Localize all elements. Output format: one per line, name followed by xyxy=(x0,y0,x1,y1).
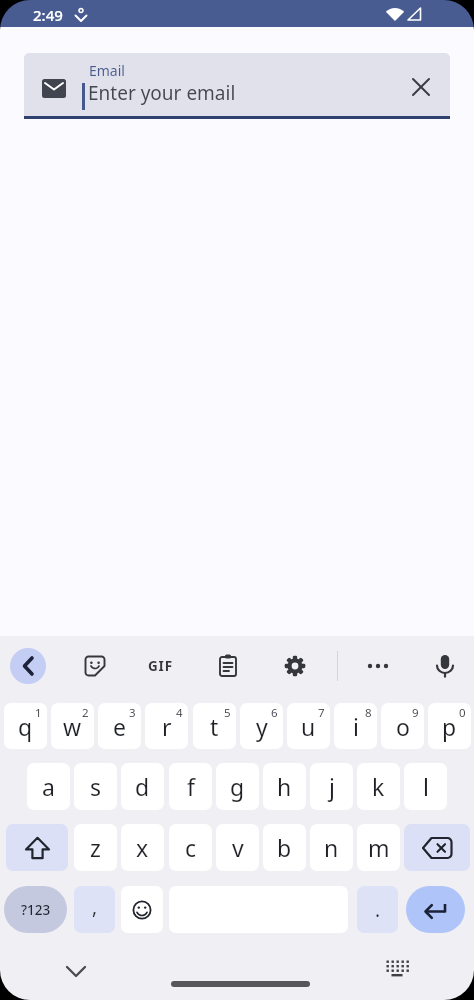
staticText: e xyxy=(113,711,126,742)
staticText: p xyxy=(442,711,457,742)
staticText: w xyxy=(63,711,82,742)
staticText: ?123 xyxy=(21,901,51,919)
button[interactable]: u xyxy=(287,703,330,749)
button[interactable] xyxy=(212,650,244,682)
button[interactable] xyxy=(79,650,111,682)
button[interactable] xyxy=(406,886,465,933)
button[interactable] xyxy=(404,824,470,871)
button[interactable]: . xyxy=(357,886,398,933)
staticText: y xyxy=(256,711,268,742)
staticText: f xyxy=(187,771,195,802)
staticText: z xyxy=(90,832,101,863)
button[interactable]: y xyxy=(240,703,283,749)
staticText: v xyxy=(232,832,244,863)
staticText: b xyxy=(277,832,292,863)
staticText: c xyxy=(185,832,197,863)
staticText: o xyxy=(396,711,410,742)
staticText: n xyxy=(324,832,339,863)
button[interactable]: d xyxy=(121,763,164,810)
staticText: m xyxy=(368,832,390,863)
staticText: 7 xyxy=(318,705,325,721)
staticText: r xyxy=(162,711,172,742)
button[interactable]: k xyxy=(357,763,400,810)
staticText: h xyxy=(277,771,292,802)
staticText: s xyxy=(90,771,102,802)
staticText: i xyxy=(353,711,359,742)
button[interactable]: n xyxy=(310,824,353,871)
staticText: 2:49 xyxy=(33,5,63,25)
button[interactable]: b xyxy=(263,824,306,871)
staticText: d xyxy=(135,771,150,802)
button[interactable]: z xyxy=(74,824,117,871)
button[interactable]: a xyxy=(27,763,70,810)
button[interactable] xyxy=(121,886,163,933)
button[interactable]: o xyxy=(381,703,424,749)
button[interactable]: v xyxy=(216,824,259,871)
button[interactable] xyxy=(6,824,68,871)
staticText: 5 xyxy=(224,705,231,721)
staticText: t xyxy=(210,711,219,742)
button[interactable]: s xyxy=(74,763,117,810)
staticText: g xyxy=(230,771,245,802)
staticText: j xyxy=(329,771,335,802)
button[interactable] xyxy=(362,650,394,682)
staticText: x xyxy=(136,832,149,863)
button[interactable] xyxy=(279,650,311,682)
button[interactable]: ?123 xyxy=(4,886,67,933)
button[interactable]: r xyxy=(145,703,188,749)
staticText: u xyxy=(301,711,316,742)
staticText: 1 xyxy=(35,705,42,721)
button[interactable] xyxy=(429,650,461,682)
staticText: . xyxy=(375,897,381,923)
button[interactable]: i xyxy=(334,703,377,749)
button[interactable]: j xyxy=(310,763,353,810)
staticText: Email xyxy=(89,61,125,80)
staticText: k xyxy=(372,771,385,802)
button[interactable] xyxy=(405,71,437,103)
button[interactable]: c xyxy=(169,824,212,871)
staticText: a xyxy=(42,771,55,802)
staticText: q xyxy=(18,711,33,742)
staticText: GIF xyxy=(148,657,173,675)
button[interactable]: , xyxy=(74,886,115,933)
staticText: 9 xyxy=(412,705,419,721)
staticText: 3 xyxy=(129,705,136,721)
button[interactable]: f xyxy=(169,763,212,810)
staticText: , xyxy=(92,894,98,920)
staticText: Enter your email xyxy=(88,80,236,106)
button[interactable] xyxy=(60,955,92,987)
staticText: l xyxy=(423,771,429,802)
button[interactable]: t xyxy=(193,703,236,749)
button[interactable]: l xyxy=(404,763,447,810)
button[interactable] xyxy=(10,648,46,684)
button[interactable]: GIF xyxy=(140,650,180,682)
button[interactable] xyxy=(381,953,413,985)
button[interactable]: q xyxy=(4,703,47,749)
button[interactable]: g xyxy=(216,763,259,810)
button[interactable]: h xyxy=(263,763,306,810)
button[interactable]: p xyxy=(428,703,471,749)
button[interactable]: m xyxy=(357,824,400,871)
staticText: 8 xyxy=(365,705,372,721)
button[interactable]: Email xyxy=(24,53,450,119)
staticText: 6 xyxy=(271,705,278,721)
staticText: 4 xyxy=(176,705,183,721)
button[interactable]: x xyxy=(121,824,164,871)
button[interactable]: w xyxy=(51,703,94,749)
staticText: 2 xyxy=(82,705,89,721)
button[interactable]: e xyxy=(98,703,141,749)
staticText: 0 xyxy=(459,705,466,721)
